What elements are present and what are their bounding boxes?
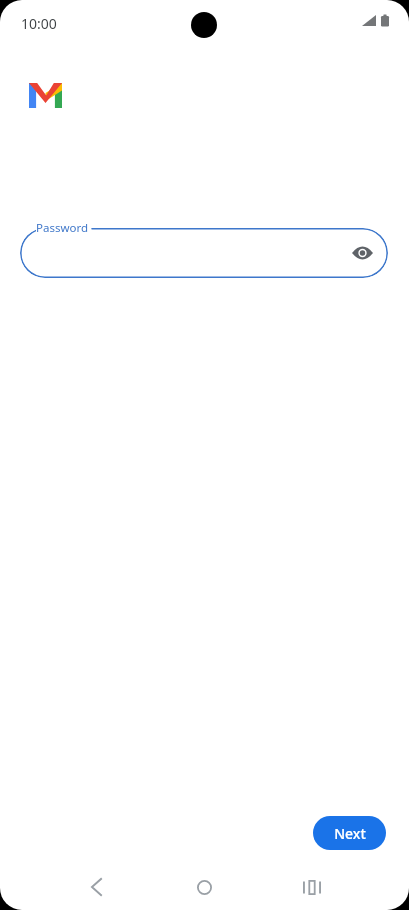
button[interactable]: Next bbox=[313, 816, 386, 850]
staticText: Next bbox=[334, 824, 366, 843]
button[interactable]: Home bbox=[176, 864, 232, 910]
staticText: 10:00 bbox=[21, 14, 57, 33]
button[interactable]: Recent apps bbox=[284, 864, 340, 910]
button[interactable]: Show password bbox=[347, 238, 377, 268]
staticText: Password bbox=[36, 220, 89, 236]
button[interactable]: Show password bbox=[20, 228, 388, 278]
other: Gmail bbox=[29, 83, 62, 108]
button[interactable]: Back bbox=[68, 864, 124, 910]
